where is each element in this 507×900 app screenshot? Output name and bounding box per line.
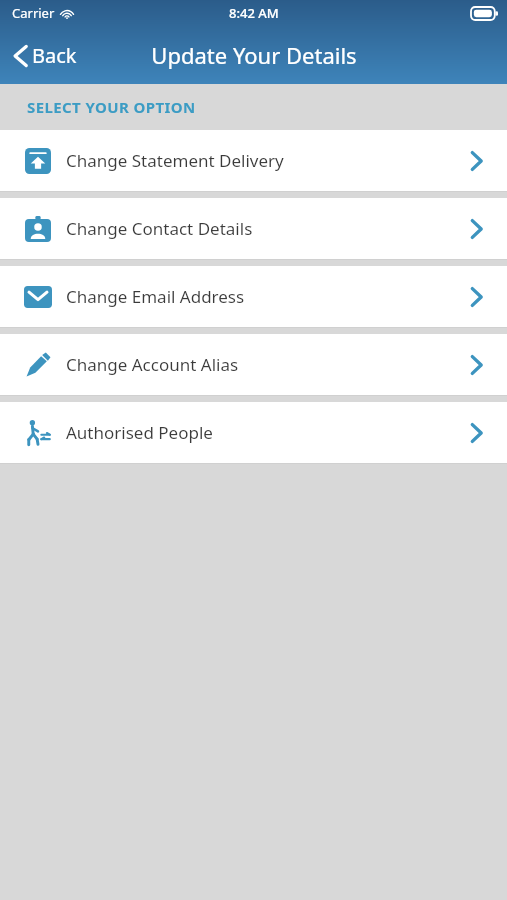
other: Account alias xyxy=(25,352,51,378)
staticText: SELECT YOUR OPTION xyxy=(27,97,196,117)
staticText: Carrier xyxy=(12,4,55,22)
staticText: Authorised People xyxy=(66,421,465,444)
staticText: 8:42 AM xyxy=(229,4,279,22)
other: Statement delivery xyxy=(25,148,51,174)
other: Email address xyxy=(24,286,52,308)
staticText: Back xyxy=(32,42,77,69)
staticText: Change Account Alias xyxy=(66,353,465,376)
button[interactable]: Email address xyxy=(0,266,507,327)
other: Contact details xyxy=(25,216,51,242)
staticText: Change Contact Details xyxy=(66,217,465,240)
button[interactable]: Statement delivery xyxy=(0,130,507,191)
button[interactable]: Account alias xyxy=(0,334,507,395)
other: Authorised people xyxy=(24,419,52,447)
staticText: Update Your Details xyxy=(151,40,357,70)
button[interactable]: Back xyxy=(0,36,87,75)
staticText: Change Email Address xyxy=(66,285,465,308)
button[interactable]: Authorised people xyxy=(0,402,507,463)
staticText: Change Statement Delivery xyxy=(66,149,465,172)
button[interactable]: Contact details xyxy=(0,198,507,259)
